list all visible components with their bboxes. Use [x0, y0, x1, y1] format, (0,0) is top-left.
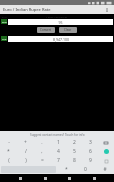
button[interactable]: 5: [66, 147, 82, 156]
button[interactable]: ,: [34, 147, 50, 156]
staticText: 8,947.100: [53, 37, 69, 42]
staticText: -: [8, 139, 10, 146]
button[interactable]: [103, 158, 109, 164]
button[interactable]: 9: [82, 156, 98, 165]
staticText: 1 EUR = 94.18 INR: [46, 15, 67, 18]
button[interactable]: Clear: [59, 27, 77, 33]
staticText: 4: [57, 148, 60, 155]
staticText: Suggest contact names? Touch for info: [30, 133, 85, 137]
button[interactable]: Back: [15, 174, 25, 182]
staticText: 1: [57, 139, 60, 146]
staticText: ,: [41, 148, 43, 155]
button[interactable]: 2: [66, 138, 82, 147]
staticText: EUR: [2, 20, 7, 23]
staticText: ): [25, 157, 27, 164]
staticText: *: [65, 166, 68, 173]
button[interactable]: 7: [50, 156, 66, 165]
button[interactable]: =: [34, 156, 50, 165]
button[interactable]: 0: [76, 165, 95, 174]
staticText: 7: [57, 157, 60, 164]
button[interactable]: Backspace: [103, 140, 109, 146]
button[interactable]: 6: [82, 147, 98, 156]
button[interactable]: *: [0, 147, 17, 156]
button[interactable]: More options: [103, 6, 111, 14]
button[interactable]: Home: [40, 174, 50, 182]
staticText: =: [41, 157, 44, 164]
staticText: +: [24, 139, 27, 146]
staticText: 8: [73, 157, 76, 164]
staticText: 2: [73, 139, 76, 146]
staticText: 6: [89, 148, 92, 155]
button[interactable]: *: [57, 165, 76, 174]
button[interactable]: -: [0, 138, 17, 147]
button[interactable]: #: [95, 165, 114, 174]
button[interactable]: Keyboard: [89, 174, 99, 182]
button[interactable]: 8: [66, 156, 82, 165]
staticText: #: [103, 166, 107, 173]
staticText: /: [25, 148, 27, 155]
button[interactable]: +: [17, 138, 34, 147]
staticText: *: [7, 148, 10, 155]
button[interactable]: Recents: [64, 174, 74, 182]
staticText: Clear: [64, 28, 72, 32]
button[interactable]: Enter: [104, 149, 109, 154]
staticText: .: [41, 139, 43, 146]
staticText: 9: [89, 157, 92, 164]
staticText: (: [8, 157, 10, 164]
button[interactable]: 1: [50, 138, 66, 147]
staticText: 95: [58, 20, 63, 25]
button[interactable]: ): [17, 156, 34, 165]
button[interactable]: 8,947.100: [8, 36, 113, 42]
button[interactable]: (: [0, 156, 17, 165]
staticText: INR: [2, 37, 7, 40]
staticText: 0: [84, 166, 87, 173]
button[interactable]: 4: [50, 147, 66, 156]
staticText: Euro / Indian Rupee Rate: [3, 7, 51, 12]
button[interactable]: /: [17, 147, 34, 156]
button[interactable]: 95: [8, 19, 113, 25]
staticText: Convert: [40, 28, 52, 32]
staticText: EUR: [2, 15, 7, 18]
button[interactable]: Convert: [37, 27, 55, 33]
staticText: 5: [73, 148, 76, 155]
staticText: 3: [89, 139, 92, 146]
button[interactable]: 3: [82, 138, 98, 147]
